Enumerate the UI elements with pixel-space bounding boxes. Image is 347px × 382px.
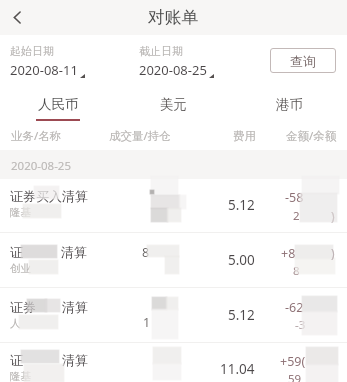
staticText: 费用	[233, 129, 256, 143]
staticText: 59	[288, 371, 302, 382]
staticText: 成交量/持仓	[109, 128, 171, 144]
staticText: 起始日期	[10, 44, 54, 58]
staticText: 金额/余额	[286, 128, 337, 144]
button[interactable]: 证	[0, 341, 347, 382]
button[interactable]: 证	[0, 233, 347, 287]
staticText: -62	[285, 299, 304, 316]
staticText: 1	[143, 314, 151, 331]
staticText: 清算	[61, 244, 87, 260]
staticText: 隆基	[10, 206, 31, 219]
staticText: 2	[293, 208, 300, 224]
button[interactable]: 人民币	[0, 96, 115, 128]
staticText: 证	[10, 244, 23, 260]
staticText: 隆基	[10, 370, 31, 382]
staticText: 清算	[62, 299, 88, 315]
staticText: 5.12	[228, 306, 255, 324]
button[interactable]: 证券	[0, 288, 347, 342]
staticText: 证券买入清算	[10, 188, 88, 204]
staticText: 2020-08-25	[11, 158, 72, 174]
staticText: 对账单	[148, 7, 199, 28]
staticText: 8	[293, 263, 300, 279]
staticText: 查询	[290, 53, 316, 69]
staticText: 证券	[10, 299, 36, 315]
button[interactable]: 截止日期	[139, 44, 214, 79]
staticText: 5.00	[228, 251, 255, 269]
staticText: 人	[10, 317, 21, 330]
staticText: 5.12	[228, 196, 255, 214]
button[interactable]: 起始日期	[10, 44, 85, 79]
staticText: 港币	[276, 96, 303, 113]
staticText: -58	[285, 189, 304, 206]
staticText: 证	[10, 352, 23, 368]
button[interactable]: Back	[2, 2, 32, 32]
staticText: 2020-08-25	[139, 61, 207, 79]
staticText: 2020-08-11	[10, 61, 78, 79]
button[interactable]: 港币	[231, 96, 347, 128]
staticText: -3	[295, 317, 306, 333]
staticText: 截止日期	[139, 44, 183, 58]
staticText: 美元	[160, 96, 187, 113]
button[interactable]: 证券买入清算	[0, 177, 347, 232]
staticText: )	[331, 208, 335, 224]
button[interactable]: 美元	[115, 96, 231, 128]
staticText: )	[331, 245, 335, 261]
staticText: 人民币	[38, 96, 79, 113]
staticText: 8	[142, 244, 150, 261]
staticText: 业务/名称	[11, 128, 62, 144]
staticText: 创业	[10, 262, 31, 275]
staticText: +59(	[280, 353, 306, 370]
button[interactable]: 查询	[270, 48, 336, 73]
staticText: 清算	[62, 352, 88, 368]
staticText: 11.04	[220, 360, 255, 378]
staticText: +8	[281, 245, 296, 262]
